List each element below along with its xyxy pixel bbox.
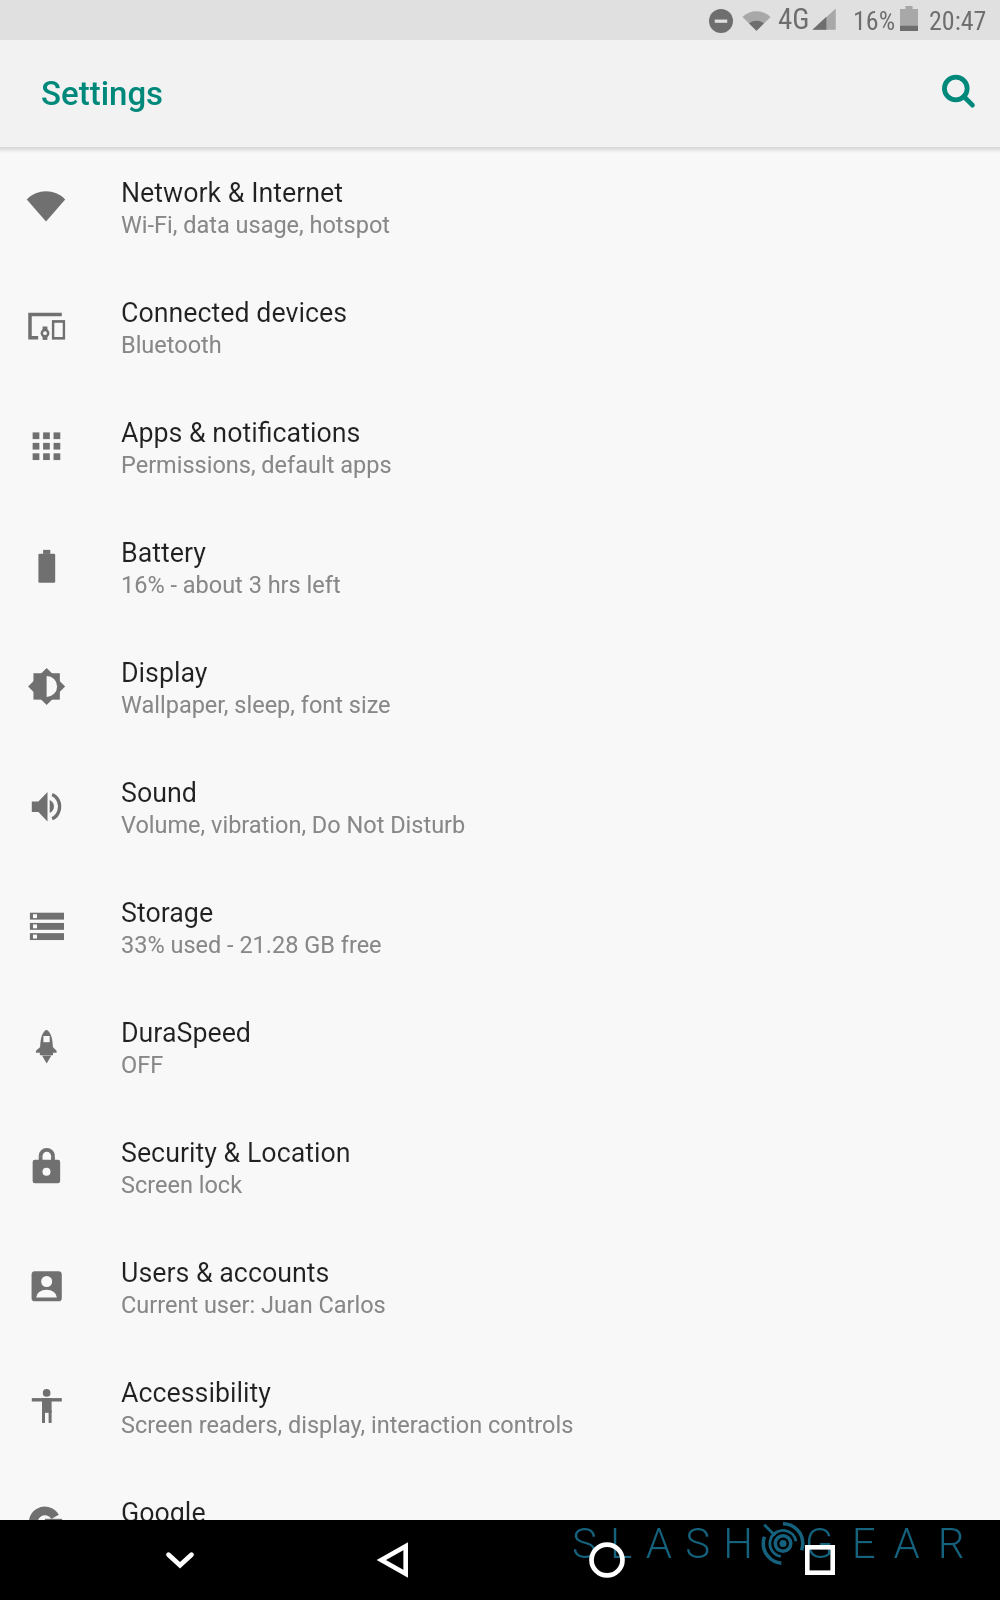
staticText: Apps & notifications: [121, 417, 361, 448]
button[interactable]: Connected devices: [0, 267, 1000, 387]
staticText: 20:47: [929, 6, 987, 36]
staticText: Permissions, default apps: [121, 451, 392, 479]
button[interactable]: Sound: [0, 747, 1000, 867]
staticText: Wi-Fi, data usage, hotspot: [121, 211, 390, 239]
button[interactable]: Back: [363, 1530, 423, 1590]
button[interactable]: Users & accounts: [0, 1227, 1000, 1347]
button[interactable]: Apps & notifications: [0, 387, 1000, 507]
staticText: Connected devices: [121, 297, 348, 328]
staticText: Current user: Juan Carlos: [121, 1291, 386, 1319]
staticText: Screen readers, display, interaction con…: [121, 1411, 574, 1439]
staticText: Google: [121, 1497, 206, 1528]
staticText: Users & accounts: [121, 1257, 330, 1288]
button[interactable]: Search: [929, 63, 989, 123]
button[interactable]: Home: [577, 1530, 637, 1590]
staticText: Sound: [121, 777, 197, 808]
button[interactable]: DuraSpeed: [0, 987, 1000, 1107]
staticText: Bluetooth: [121, 331, 222, 359]
button[interactable]: Storage: [0, 867, 1000, 987]
staticText: DuraSpeed: [121, 1017, 251, 1048]
staticText: Storage: [121, 897, 214, 928]
button[interactable]: Security & Location: [0, 1107, 1000, 1227]
button[interactable]: Hide keyboard: [150, 1530, 210, 1590]
staticText: Wallpaper, sleep, font size: [121, 691, 391, 719]
staticText: 4G: [778, 2, 810, 36]
staticText: Battery: [121, 537, 207, 568]
staticText: SLASH: [572, 1519, 767, 1568]
button[interactable]: Google: [0, 1467, 1000, 1587]
staticText: 16%: [853, 6, 896, 36]
staticText: Settings: [41, 74, 164, 113]
staticText: 16% - about 3 hrs left: [121, 571, 341, 599]
staticText: GEAR: [805, 1519, 983, 1568]
button[interactable]: Network & Internet: [0, 147, 1000, 267]
staticText: Security & Location: [121, 1137, 351, 1168]
staticText: Network & Internet: [121, 177, 344, 208]
staticText: Services & preferences: [121, 1531, 360, 1559]
staticText: Display: [121, 657, 208, 688]
staticText: OFF: [121, 1051, 164, 1079]
staticText: Volume, vibration, Do Not Disturb: [121, 811, 466, 839]
button[interactable]: Battery: [0, 507, 1000, 627]
button[interactable]: Display: [0, 627, 1000, 747]
staticText: Accessibility: [121, 1377, 271, 1408]
staticText: Screen lock: [121, 1171, 243, 1199]
button[interactable]: Recent apps: [790, 1530, 850, 1590]
staticText: 33% used - 21.28 GB free: [121, 931, 382, 959]
button[interactable]: Accessibility: [0, 1347, 1000, 1467]
